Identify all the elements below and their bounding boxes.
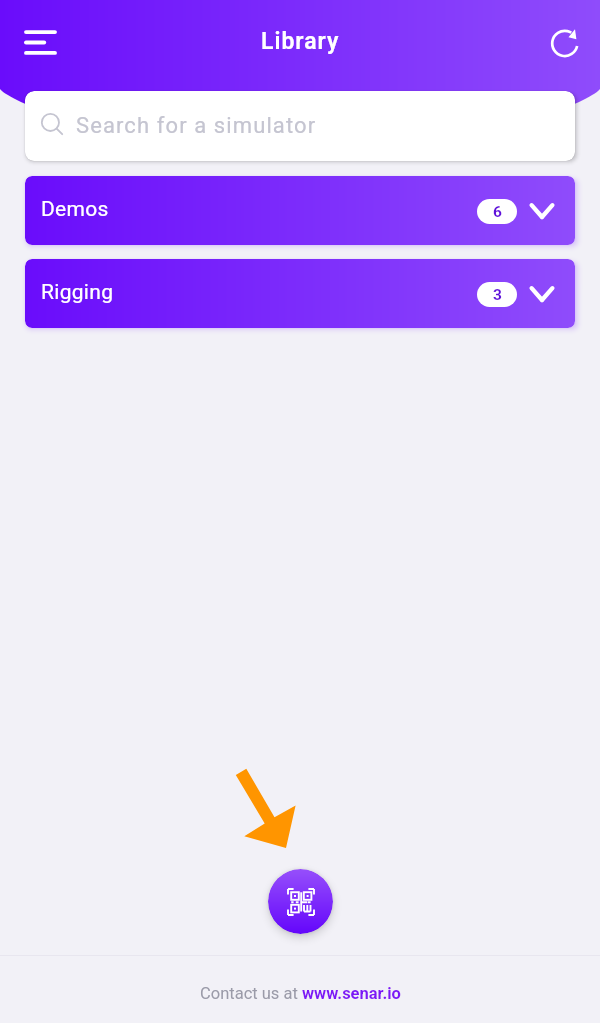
staticText: Search for a simulator [76, 113, 317, 139]
button[interactable]: www.senar.io [302, 984, 401, 1003]
staticText: 3 [493, 286, 502, 304]
button[interactable]: Scan QR code [268, 869, 333, 934]
button[interactable]: Rigging [25, 259, 575, 328]
staticText: Contact us at [200, 984, 302, 1003]
button[interactable]: Refresh [540, 18, 590, 68]
staticText: Demos [41, 197, 109, 222]
button[interactable]: Demos [25, 176, 575, 245]
staticText: Library [261, 28, 340, 55]
button[interactable]: Open navigation menu [10, 12, 70, 72]
staticText: Rigging [41, 280, 114, 305]
button[interactable]: Search for a simulator [25, 91, 575, 161]
staticText: 6 [493, 203, 502, 221]
